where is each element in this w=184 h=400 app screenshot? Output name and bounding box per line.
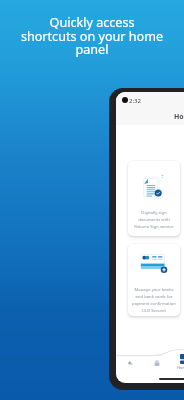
button[interactable]: Digitally sign documents with Rekono Sig… bbox=[128, 161, 180, 236]
staticText: 2:32 bbox=[129, 97, 141, 105]
staticText: Digitally sign documents with Rekono Sig… bbox=[131, 210, 177, 230]
staticText: Home bbox=[174, 112, 184, 122]
button[interactable]: Home bbox=[177, 354, 184, 370]
button[interactable]: Manage your banks and bank cards for pay… bbox=[128, 244, 180, 316]
button[interactable]: Security bbox=[153, 359, 161, 367]
button[interactable]: Services bbox=[128, 361, 133, 366]
staticText: Quickly access shortcuts on your home pa… bbox=[2, 14, 182, 57]
staticText: Manage your banks and bank cards for pay… bbox=[131, 287, 177, 314]
staticText: Home bbox=[177, 365, 184, 370]
